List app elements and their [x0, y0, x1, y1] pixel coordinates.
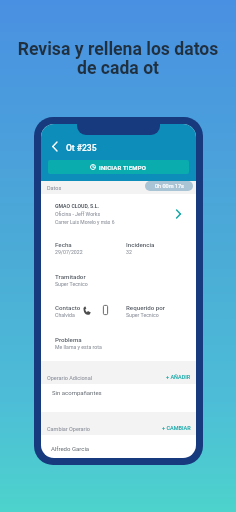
- button[interactable]: Fecha: [41, 241, 196, 257]
- staticText: Fecha: [55, 241, 72, 248]
- staticText: Alfredo García: [51, 445, 90, 452]
- staticText: Oficina - Jeff Works: [55, 211, 101, 217]
- staticText: Contacto: [55, 304, 81, 311]
- button[interactable]: GMAO CLOUD, S.L.: [41, 198, 196, 226]
- staticText: Super Tecnico: [126, 312, 159, 318]
- staticText: INICIAR TIEMPO: [99, 164, 147, 171]
- staticText: Incidencia: [126, 241, 155, 248]
- staticText: Me llama y esta rota: [55, 344, 102, 350]
- button[interactable]: + CAMBIAR: [157, 423, 196, 433]
- staticText: Cambiar Operario: [47, 426, 90, 432]
- staticText: Chalvida: [55, 312, 75, 318]
- staticText: GMAO CLOUD, S.L.: [55, 203, 100, 209]
- staticText: Tramitador: [55, 273, 86, 280]
- staticText: + AÑADIR: [166, 374, 191, 380]
- staticText: + CAMBIAR: [162, 425, 191, 431]
- button[interactable]: INICIAR TIEMPO: [48, 160, 189, 174]
- staticText: Operario Adicional: [47, 375, 92, 381]
- staticText: Carrer Luis Morelo y más 6: [55, 219, 115, 225]
- button[interactable]: Back: [47, 139, 61, 153]
- button[interactable]: Problema: [41, 336, 196, 352]
- staticText: 0h 00m 17s: [155, 183, 184, 189]
- staticText: Super Tecnico: [55, 281, 88, 287]
- staticText: 29/07/2022: [55, 249, 83, 255]
- button[interactable]: Tramitador: [41, 273, 196, 289]
- staticText: Ot #235: [66, 143, 97, 153]
- button[interactable]: + AÑADIR: [161, 372, 196, 382]
- button[interactable]: Send SMS: [99, 304, 111, 316]
- staticText: Datos: [47, 185, 62, 191]
- staticText: Sin acompañantes: [52, 389, 102, 396]
- staticText: Revisa y rellena los datos de cada ot: [0, 39, 236, 78]
- button[interactable]: Call: [81, 304, 93, 316]
- staticText: Requerido por: [126, 304, 165, 311]
- staticText: Problema: [55, 336, 82, 343]
- staticText: 32: [126, 249, 132, 255]
